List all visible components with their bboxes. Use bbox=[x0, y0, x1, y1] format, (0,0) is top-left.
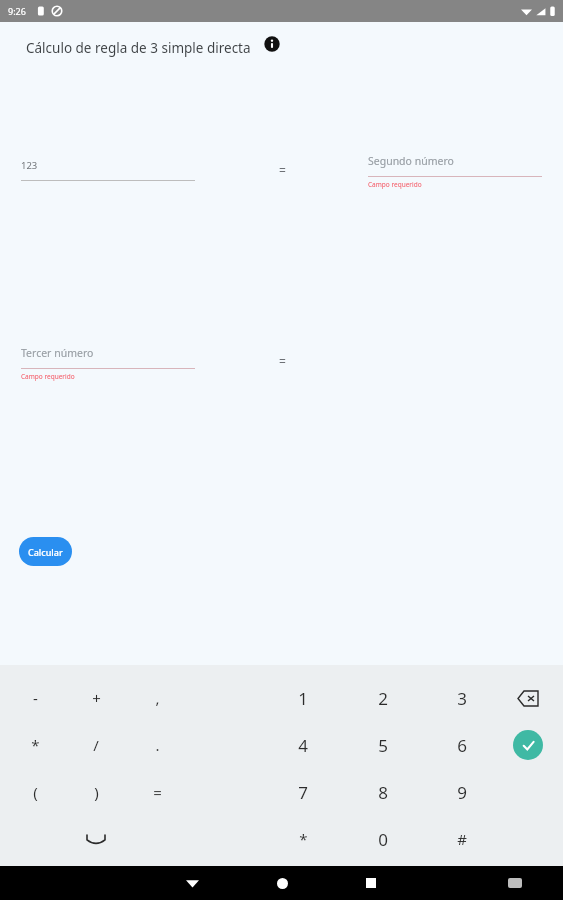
staticText: 7 bbox=[298, 781, 308, 804]
staticText: 9:26 bbox=[8, 5, 26, 17]
staticText: Campo requerido bbox=[368, 180, 422, 189]
button[interactable]: 7 bbox=[279, 774, 327, 810]
staticText: = bbox=[279, 162, 286, 174]
staticText: Cálculo de regla de 3 simple directa bbox=[26, 39, 251, 57]
button[interactable]: 6 bbox=[438, 727, 486, 763]
staticText: 2 bbox=[378, 687, 388, 710]
staticText: 123 bbox=[21, 159, 38, 172]
button[interactable]: 2 bbox=[359, 680, 407, 716]
button[interactable]: Atrás bbox=[170, 866, 214, 900]
staticText: * bbox=[31, 735, 40, 755]
button[interactable]: 5 bbox=[359, 727, 407, 763]
button[interactable]: * bbox=[11, 727, 59, 763]
button[interactable]: 1 bbox=[279, 680, 327, 716]
staticText: ( bbox=[33, 782, 38, 802]
staticText: * bbox=[299, 829, 308, 849]
button[interactable]: Calcular bbox=[19, 537, 72, 566]
button[interactable]: 4 bbox=[279, 727, 327, 763]
button[interactable]: 8 bbox=[359, 774, 407, 810]
button[interactable]: # bbox=[438, 821, 486, 857]
button[interactable]: + bbox=[72, 680, 120, 716]
button[interactable]: Borrar bbox=[506, 682, 550, 714]
staticText: Campo requerido bbox=[21, 372, 75, 381]
staticText: Tercer número bbox=[21, 346, 94, 360]
button[interactable]: / bbox=[72, 727, 120, 763]
staticText: 4 bbox=[298, 734, 308, 757]
staticText: = bbox=[279, 353, 286, 365]
button[interactable]: - bbox=[11, 680, 59, 716]
staticText: ) bbox=[94, 782, 99, 802]
button[interactable]: 123 bbox=[21, 155, 195, 181]
button[interactable]: Segundo número bbox=[368, 151, 542, 189]
button[interactable]: Teclado bbox=[495, 866, 535, 900]
staticText: 6 bbox=[457, 734, 467, 757]
staticText: , bbox=[155, 688, 160, 708]
staticText: 1 bbox=[298, 687, 308, 710]
staticText: - bbox=[33, 688, 38, 708]
staticText: 5 bbox=[378, 734, 388, 757]
button[interactable]: ) bbox=[72, 774, 120, 810]
button[interactable]: Recientes bbox=[349, 866, 393, 900]
staticText: 9 bbox=[457, 781, 467, 804]
button[interactable]: Información bbox=[262, 34, 282, 54]
button[interactable]: , bbox=[133, 680, 181, 716]
button[interactable]: Tercer número bbox=[21, 343, 195, 381]
staticText: / bbox=[93, 735, 99, 755]
button[interactable]: 0 bbox=[359, 821, 407, 857]
staticText: Calcular bbox=[28, 546, 63, 558]
staticText: Segundo número bbox=[368, 154, 454, 168]
staticText: . bbox=[155, 735, 160, 755]
button[interactable]: * bbox=[279, 821, 327, 857]
staticText: 8 bbox=[378, 781, 388, 804]
button[interactable]: = bbox=[133, 774, 181, 810]
staticText: # bbox=[457, 829, 467, 849]
button[interactable]: Inicio bbox=[260, 866, 304, 900]
staticText: 0 bbox=[378, 828, 388, 851]
staticText: = bbox=[153, 782, 162, 802]
button[interactable]: ( bbox=[11, 774, 59, 810]
button[interactable]: Espacio bbox=[74, 823, 118, 855]
staticText: + bbox=[92, 688, 101, 708]
button[interactable]: . bbox=[133, 727, 181, 763]
button[interactable]: 3 bbox=[438, 680, 486, 716]
button[interactable]: 9 bbox=[438, 774, 486, 810]
staticText: 3 bbox=[457, 687, 467, 710]
button[interactable]: Aceptar bbox=[513, 730, 543, 760]
